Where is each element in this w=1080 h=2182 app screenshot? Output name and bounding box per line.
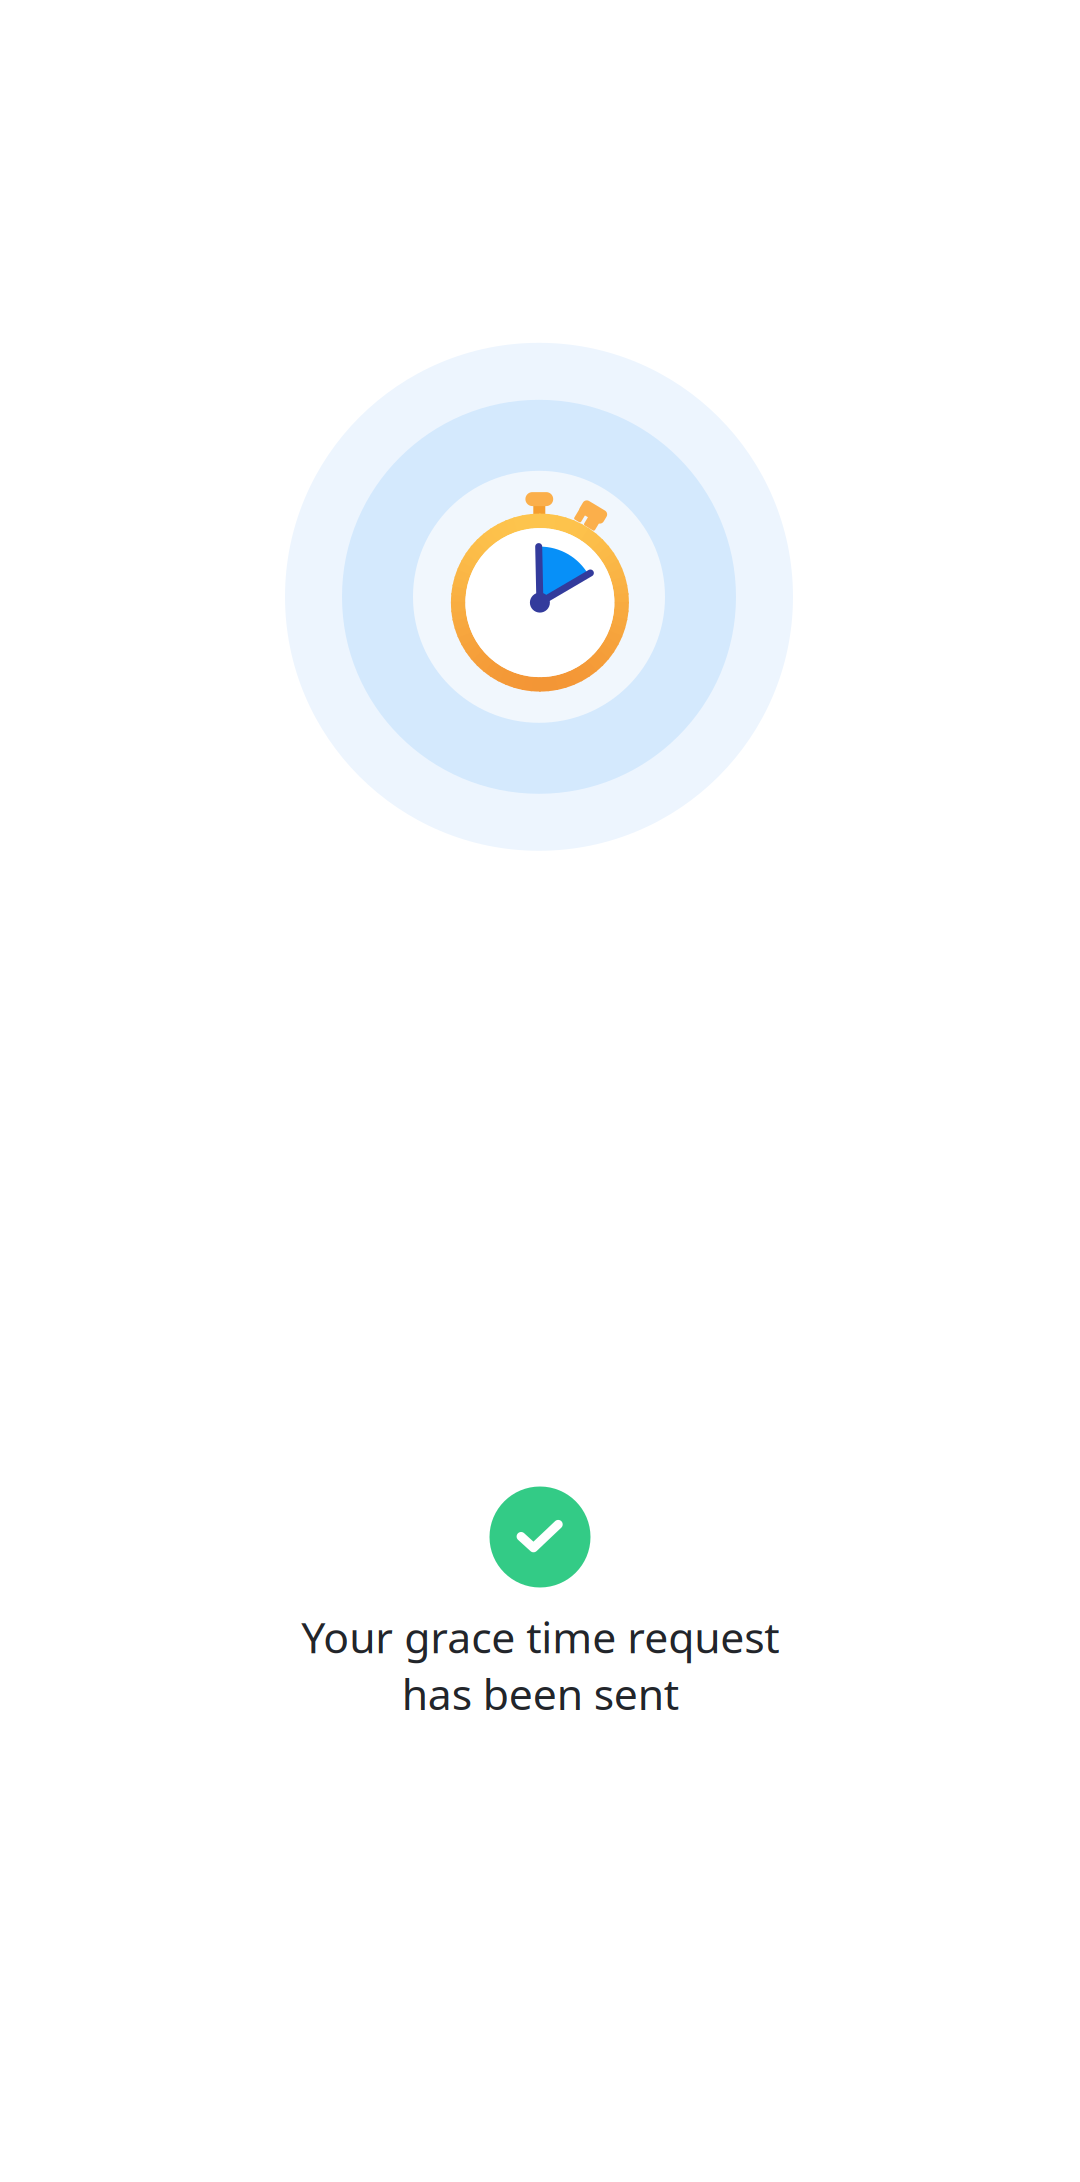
staticText: Your grace time request has been sent: [301, 1608, 779, 1722]
